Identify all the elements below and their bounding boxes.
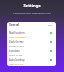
staticText: Location: [9, 49, 20, 53]
staticText: Auto backup: [9, 58, 25, 62]
staticText: While in use: [9, 54, 23, 57]
staticText: Edit: [48, 24, 53, 27]
staticText: Daily at 2 AM: [9, 63, 24, 66]
staticText: Notifications: [9, 31, 25, 35]
button[interactable]: Notifications: [9, 30, 52, 39]
staticText: Dark theme: [9, 40, 24, 44]
button[interactable]: Dark theme: [9, 39, 52, 48]
staticText: General: [9, 23, 20, 27]
staticText: Push and email: [9, 36, 26, 39]
staticText: Customise your experience here: [0, 11, 64, 14]
staticText: Settings: [0, 3, 64, 9]
button[interactable]: Location: [9, 48, 52, 57]
staticText: Follow system: [9, 45, 25, 48]
button[interactable]: Auto backup: [9, 57, 52, 66]
